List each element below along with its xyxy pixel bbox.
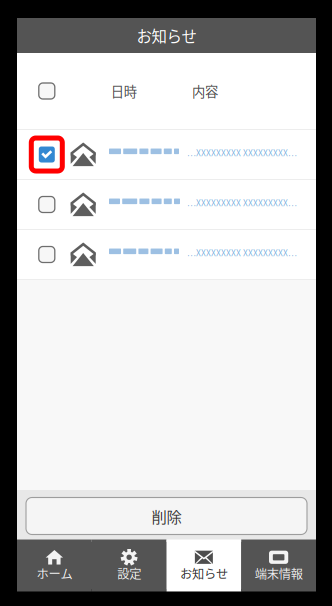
staticText: ホーム xyxy=(36,564,72,582)
button[interactable]: Select all xyxy=(17,71,57,111)
staticText: 日時 xyxy=(111,81,137,101)
staticText: お知らせ xyxy=(136,24,196,47)
button[interactable]: 設定 xyxy=(92,542,167,589)
staticText: …XXXXXXXXX XXXXXXXXX… xyxy=(187,246,297,259)
button[interactable]: …XXXXXXXXX XXXXXXXXX… xyxy=(17,230,316,279)
button[interactable]: 削除 xyxy=(17,497,316,534)
staticText: …XXXXXXXXX XXXXXXXXX… xyxy=(187,196,297,209)
staticText: お知らせ xyxy=(180,564,228,582)
staticText: …XXXXXXXXX XXXXXXXXX… xyxy=(187,146,297,159)
button[interactable]: …XXXXXXXXX XXXXXXXXX… xyxy=(17,180,316,229)
button[interactable]: ホーム xyxy=(17,542,92,589)
staticText: 設定 xyxy=(117,564,141,582)
button[interactable]: お知らせ xyxy=(166,542,241,589)
staticText: 端末情報 xyxy=(255,564,303,582)
button[interactable]: 端末情報 xyxy=(241,542,316,589)
button[interactable]: …XXXXXXXXX XXXXXXXXX… xyxy=(17,130,316,179)
staticText: 削除 xyxy=(151,505,181,527)
staticText: 内容 xyxy=(192,81,218,101)
